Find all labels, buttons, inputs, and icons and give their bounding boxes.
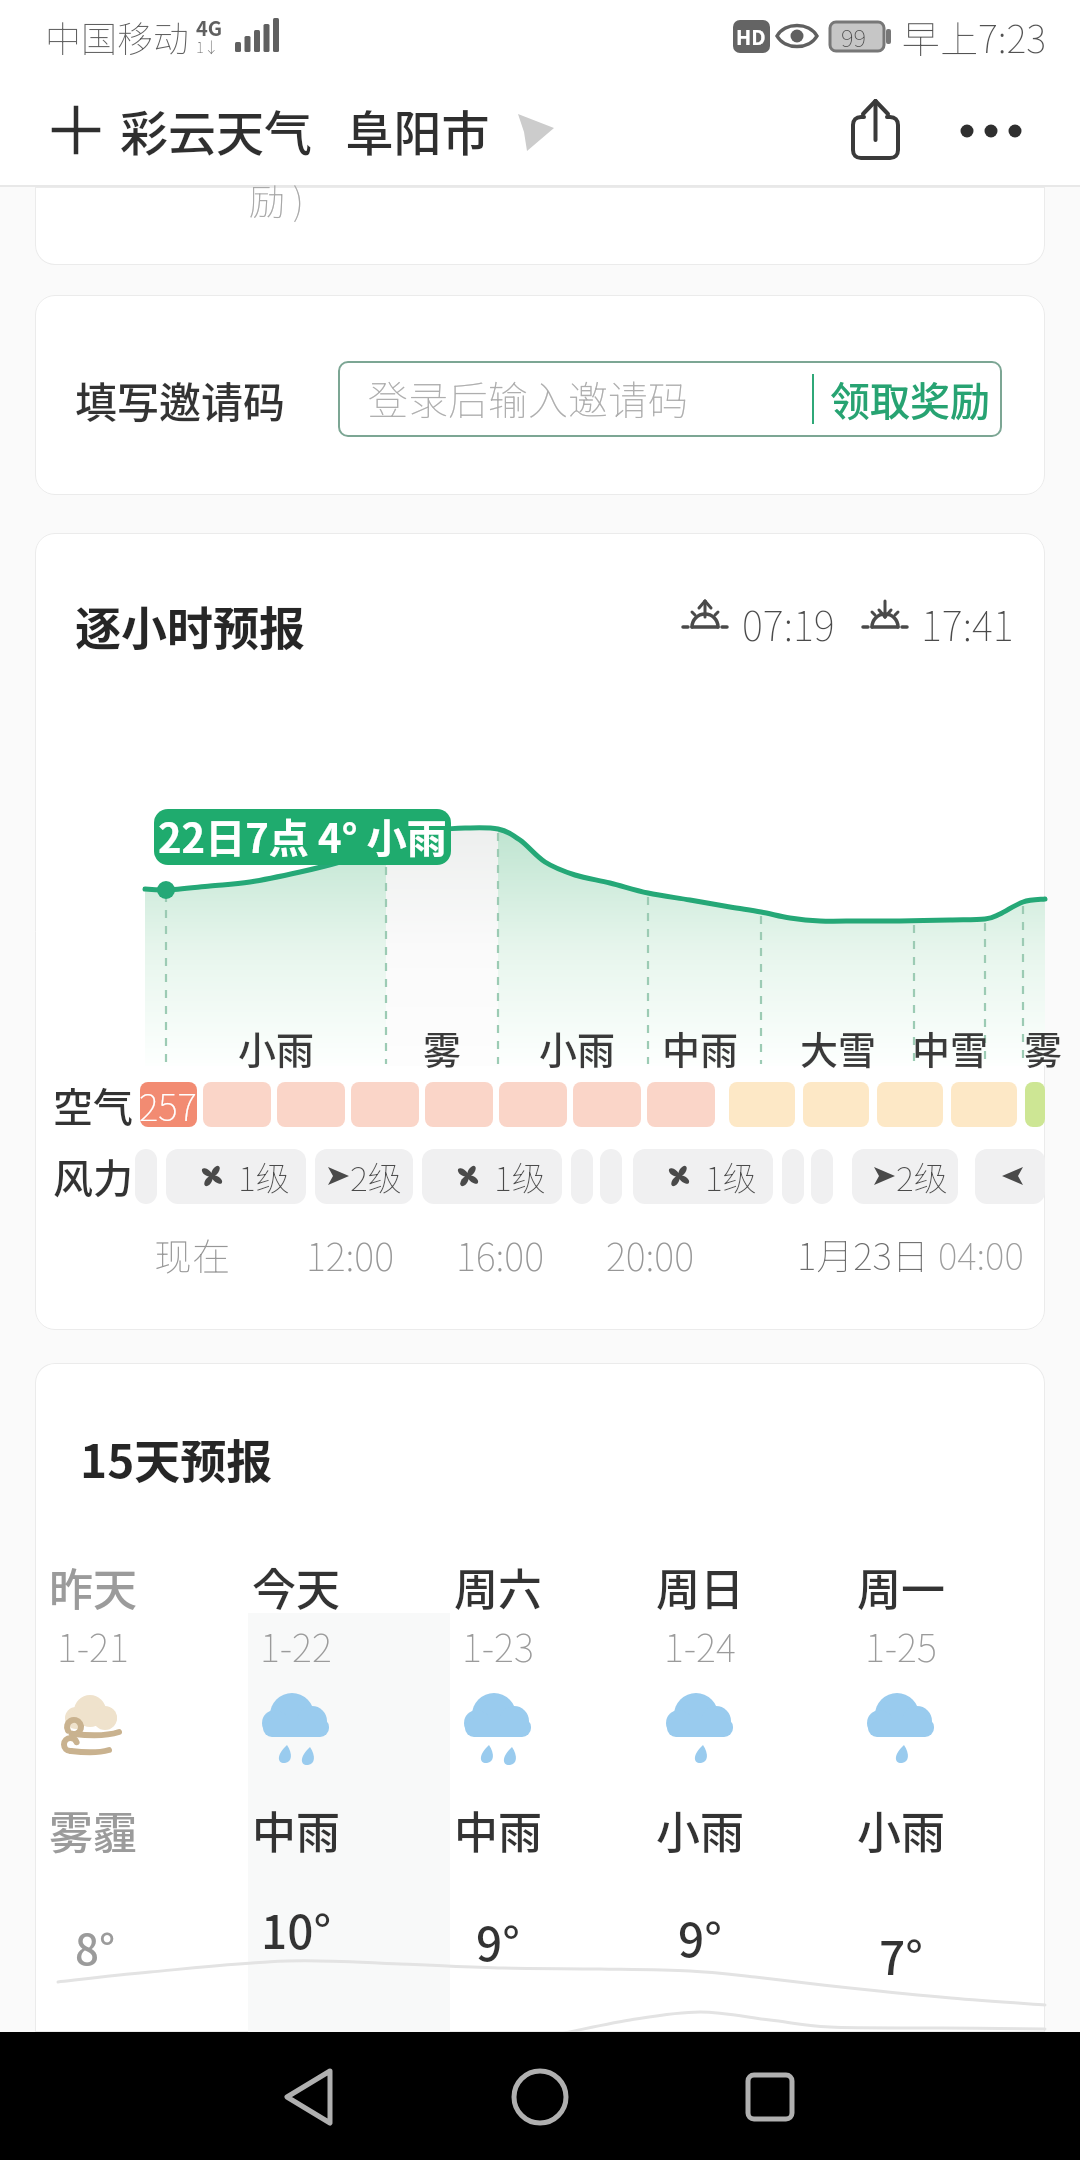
staticText: 昨天 bbox=[49, 1555, 137, 1619]
button[interactable] bbox=[338, 361, 1002, 437]
staticText: 中雪 bbox=[912, 1020, 989, 1075]
staticText: 填写邀请码 bbox=[75, 369, 286, 430]
staticText: 1级 bbox=[494, 1152, 546, 1201]
staticText: 1级 bbox=[705, 1152, 757, 1201]
staticText: 8° bbox=[75, 1916, 116, 1977]
staticText: 风力 bbox=[53, 1147, 133, 1205]
staticText: 1-22 bbox=[260, 1618, 332, 1673]
staticText: 04:00 bbox=[938, 1227, 1024, 1281]
staticText: 周日 bbox=[656, 1555, 744, 1619]
button[interactable] bbox=[166, 1149, 306, 1204]
staticText: 雾 bbox=[1024, 1020, 1063, 1075]
staticText: 20:00 bbox=[606, 1227, 694, 1282]
staticText: 1-23 bbox=[462, 1618, 534, 1673]
button[interactable] bbox=[782, 1149, 804, 1204]
staticText: 1↓ bbox=[196, 36, 219, 58]
staticText: 9° bbox=[476, 1908, 520, 1975]
staticText: 10° bbox=[261, 1896, 332, 1963]
staticText: 登录后输入邀请码 bbox=[368, 369, 688, 427]
button[interactable] bbox=[955, 95, 1027, 167]
staticText: 彩云天气 阜阳市 bbox=[120, 95, 490, 165]
button[interactable] bbox=[403, 1560, 593, 1980]
button[interactable] bbox=[633, 1149, 773, 1204]
staticText: 07:19 bbox=[742, 595, 835, 653]
staticText: 7° bbox=[879, 1922, 923, 1989]
staticText: 1-25 bbox=[865, 1618, 937, 1673]
staticText: 2级 bbox=[350, 1152, 402, 1201]
staticText: 逐小时预报 bbox=[75, 592, 305, 659]
button[interactable] bbox=[852, 1149, 958, 1204]
staticText: 4G bbox=[196, 13, 223, 42]
staticText: 22日7点 4° 小雨 bbox=[158, 807, 447, 865]
staticText: 周一 bbox=[857, 1555, 945, 1619]
staticText: 雾 bbox=[423, 1020, 462, 1075]
staticText: 领取奖励 bbox=[830, 370, 990, 428]
staticText: 现在 bbox=[154, 1227, 231, 1282]
staticText: 中雨 bbox=[252, 1798, 340, 1862]
button[interactable] bbox=[690, 2032, 850, 2160]
button[interactable] bbox=[806, 1560, 996, 1980]
button[interactable] bbox=[571, 1149, 593, 1204]
staticText: 15天预报 bbox=[80, 1425, 273, 1492]
staticText: 16:00 bbox=[456, 1227, 544, 1282]
staticText: 1月23日 bbox=[797, 1227, 929, 1281]
staticText: 小雨 bbox=[656, 1798, 744, 1862]
staticText: 大雪 bbox=[800, 1020, 877, 1075]
staticText: 中国移动 bbox=[45, 10, 190, 62]
staticText: 1-24 bbox=[664, 1618, 736, 1673]
button[interactable] bbox=[0, 1560, 188, 1980]
button[interactable] bbox=[40, 95, 112, 167]
staticText: 周六 bbox=[454, 1555, 542, 1619]
staticText: 17:41 bbox=[921, 595, 1014, 653]
staticText: 12:00 bbox=[306, 1227, 394, 1282]
button[interactable] bbox=[460, 2032, 620, 2160]
button[interactable]: 领取奖励 bbox=[820, 365, 1000, 433]
button[interactable] bbox=[135, 1149, 157, 1204]
button[interactable] bbox=[605, 1560, 795, 1980]
staticText: 雾霾 bbox=[49, 1798, 137, 1862]
button[interactable] bbox=[422, 1149, 562, 1204]
button[interactable] bbox=[975, 1149, 1045, 1204]
staticText: 9° bbox=[678, 1904, 722, 1971]
button[interactable] bbox=[600, 1149, 622, 1204]
button[interactable] bbox=[250, 2032, 410, 2160]
staticText: 257 bbox=[139, 1078, 197, 1132]
staticText: 中雨 bbox=[454, 1798, 542, 1862]
staticText: 1-21 bbox=[57, 1618, 129, 1673]
button[interactable] bbox=[315, 1149, 413, 1204]
staticText: 2级 bbox=[896, 1152, 948, 1201]
staticText: 今天 bbox=[252, 1555, 340, 1619]
staticText: 空气 bbox=[53, 1076, 133, 1134]
staticText: HD bbox=[736, 22, 766, 51]
button[interactable] bbox=[840, 95, 912, 167]
staticText: 中雨 bbox=[662, 1020, 739, 1075]
staticText: 小雨 bbox=[539, 1020, 616, 1075]
button[interactable] bbox=[811, 1149, 833, 1204]
button[interactable] bbox=[201, 1560, 391, 1980]
staticText: 1级 bbox=[238, 1152, 290, 1201]
staticText: 励 ) bbox=[249, 173, 304, 225]
staticText: 小雨 bbox=[857, 1798, 945, 1862]
staticText: 99 bbox=[841, 19, 867, 54]
staticText: 小雨 bbox=[238, 1020, 315, 1075]
staticText: 早上7:23 bbox=[902, 9, 1047, 64]
button[interactable] bbox=[115, 90, 565, 170]
